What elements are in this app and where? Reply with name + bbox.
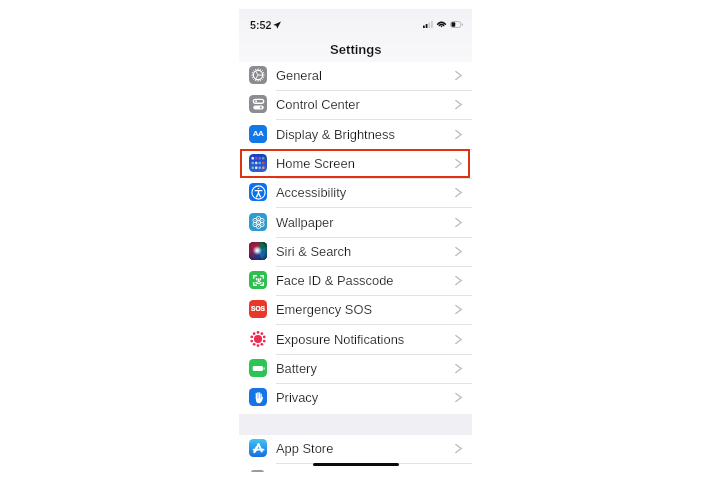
button[interactable]: General	[239, 62, 472, 91]
other: Wi-Fi	[437, 20, 446, 27]
staticText: Accessibility	[276, 185, 347, 199]
button[interactable]: Battery	[239, 355, 472, 384]
staticText: Control Center	[276, 97, 360, 111]
staticText: Privacy	[276, 390, 319, 404]
button[interactable]: Exposure Notifications	[239, 326, 472, 355]
staticText: Siri & Search	[276, 244, 352, 258]
staticText: General	[276, 68, 322, 82]
staticText: AA	[253, 129, 264, 138]
staticText: Exposure Notifications	[276, 332, 405, 346]
button[interactable]: Siri & Search	[239, 238, 472, 267]
other: Cellular signal	[423, 21, 433, 28]
staticText: Wallpaper	[276, 215, 334, 229]
staticText: Emergency SOS	[276, 302, 372, 316]
button[interactable]: Wallpaper	[239, 209, 472, 238]
button[interactable]: SOS	[239, 296, 472, 325]
button[interactable]: Wallet	[239, 464, 472, 472]
button[interactable]: App Store	[239, 435, 472, 464]
button[interactable]: Control Center	[239, 91, 472, 120]
staticText: Battery	[276, 361, 317, 375]
button[interactable]: Privacy	[239, 384, 472, 413]
staticText: Face ID & Passcode	[276, 273, 394, 287]
staticText: App Store	[276, 441, 334, 455]
staticText: Display & Brightness	[276, 127, 395, 141]
staticText: Home Screen	[276, 156, 355, 170]
button[interactable]: Face ID & Passcode	[239, 267, 472, 296]
button[interactable]: Accessibility	[239, 179, 472, 208]
other: Battery	[450, 21, 463, 28]
staticText: 5:52	[250, 19, 272, 31]
staticText: SOS	[251, 305, 265, 312]
staticText: Settings	[330, 42, 382, 57]
button[interactable]: AA	[239, 121, 472, 150]
button[interactable]: Home Screen	[239, 150, 472, 179]
